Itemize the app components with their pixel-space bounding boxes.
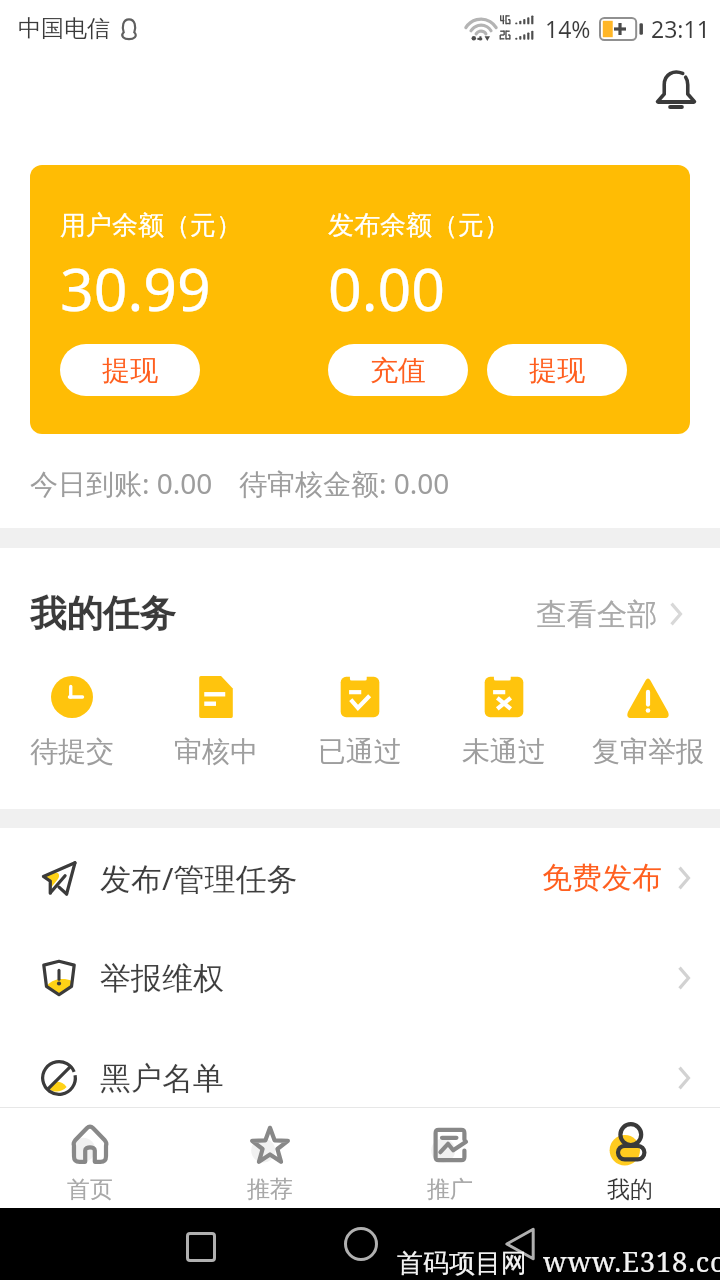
button[interactable]: 未通过	[432, 676, 576, 769]
staticText: 今日到账: 0.00	[30, 464, 213, 502]
staticText: 审核中	[174, 734, 258, 769]
staticText: 提现	[102, 353, 158, 388]
button[interactable]: 提现	[487, 344, 627, 396]
staticText: 推荐	[247, 1175, 293, 1204]
staticText: 举报维权	[100, 959, 224, 998]
staticText: 0.00	[328, 248, 446, 328]
staticText: 未通过	[462, 734, 546, 769]
staticText: 推广	[427, 1175, 473, 1204]
staticText: 我的	[607, 1175, 653, 1204]
button[interactable]: 举报维权	[0, 928, 720, 1028]
staticText: 待提交	[30, 734, 114, 769]
staticText: 用户余额（元）	[60, 209, 242, 242]
staticText: 待审核金额: 0.00	[239, 464, 450, 502]
staticText: 中国电信	[18, 14, 110, 43]
button[interactable]: 推荐	[180, 1108, 360, 1208]
staticText: 充值	[370, 353, 426, 388]
staticText: 23:11	[651, 13, 710, 44]
staticText: 我的任务	[30, 591, 176, 637]
button[interactable]: 发布/管理任务	[0, 828, 720, 928]
button[interactable]: 查看全部	[536, 590, 684, 638]
button[interactable]: 审核中	[144, 676, 288, 769]
button[interactable]: 充值	[328, 344, 468, 396]
button[interactable]: 首页	[0, 1108, 180, 1208]
button[interactable]: 待提交	[0, 676, 144, 769]
button[interactable]: 复审举报	[576, 676, 720, 769]
staticText: www.E318.com	[543, 1243, 720, 1280]
button[interactable]: 我的	[540, 1108, 720, 1208]
staticText: 黑户名单	[100, 1059, 224, 1098]
button[interactable]: Back	[496, 1220, 544, 1268]
button[interactable]: Recent apps	[177, 1223, 225, 1271]
button[interactable]: Home	[337, 1220, 385, 1268]
staticText: 提现	[529, 353, 585, 388]
button[interactable]: 提现	[60, 344, 200, 396]
staticText: 发布/管理任务	[100, 857, 298, 899]
button[interactable]: 推广	[360, 1108, 540, 1208]
button[interactable]: 已通过	[288, 676, 432, 769]
staticText: 30.99	[60, 248, 211, 328]
staticText: 已通过	[318, 734, 402, 769]
staticText: 复审举报	[592, 734, 704, 769]
staticText: 查看全部	[536, 596, 658, 632]
staticText: 首码项目网	[397, 1247, 527, 1280]
button[interactable]: 黑户名单	[0, 1028, 720, 1128]
button[interactable]: Notifications	[646, 59, 706, 119]
staticText: 14%	[545, 13, 591, 44]
staticText: 首页	[67, 1175, 113, 1204]
staticText: 发布余额（元）	[328, 209, 510, 242]
staticText: 免费发布	[542, 859, 662, 897]
